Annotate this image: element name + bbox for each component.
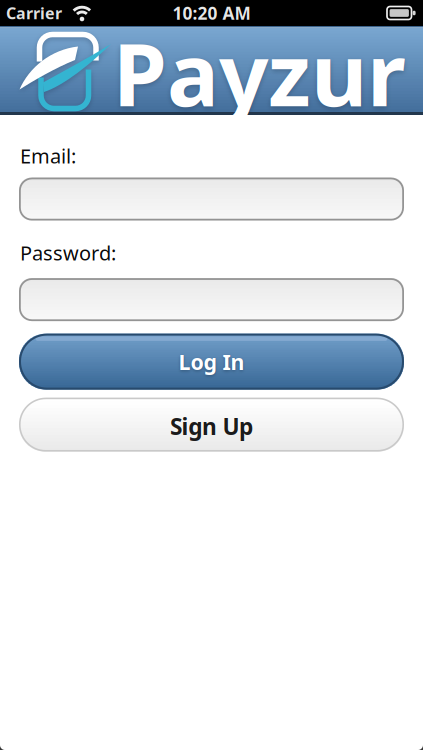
button[interactable]: Sign Up: [19, 398, 404, 452]
staticText: Sign Up: [170, 411, 253, 441]
staticText: 10:20 AM: [172, 1, 250, 24]
staticText: Carrier: [6, 2, 62, 24]
staticText: Password:: [20, 240, 116, 266]
staticText: Log In: [178, 347, 244, 376]
staticText: Payzur: [113, 15, 406, 130]
button[interactable]: Email: [19, 178, 404, 221]
staticText: Email:: [20, 142, 76, 169]
button[interactable]: Log In: [19, 334, 404, 390]
button[interactable]: Password: [19, 278, 404, 321]
